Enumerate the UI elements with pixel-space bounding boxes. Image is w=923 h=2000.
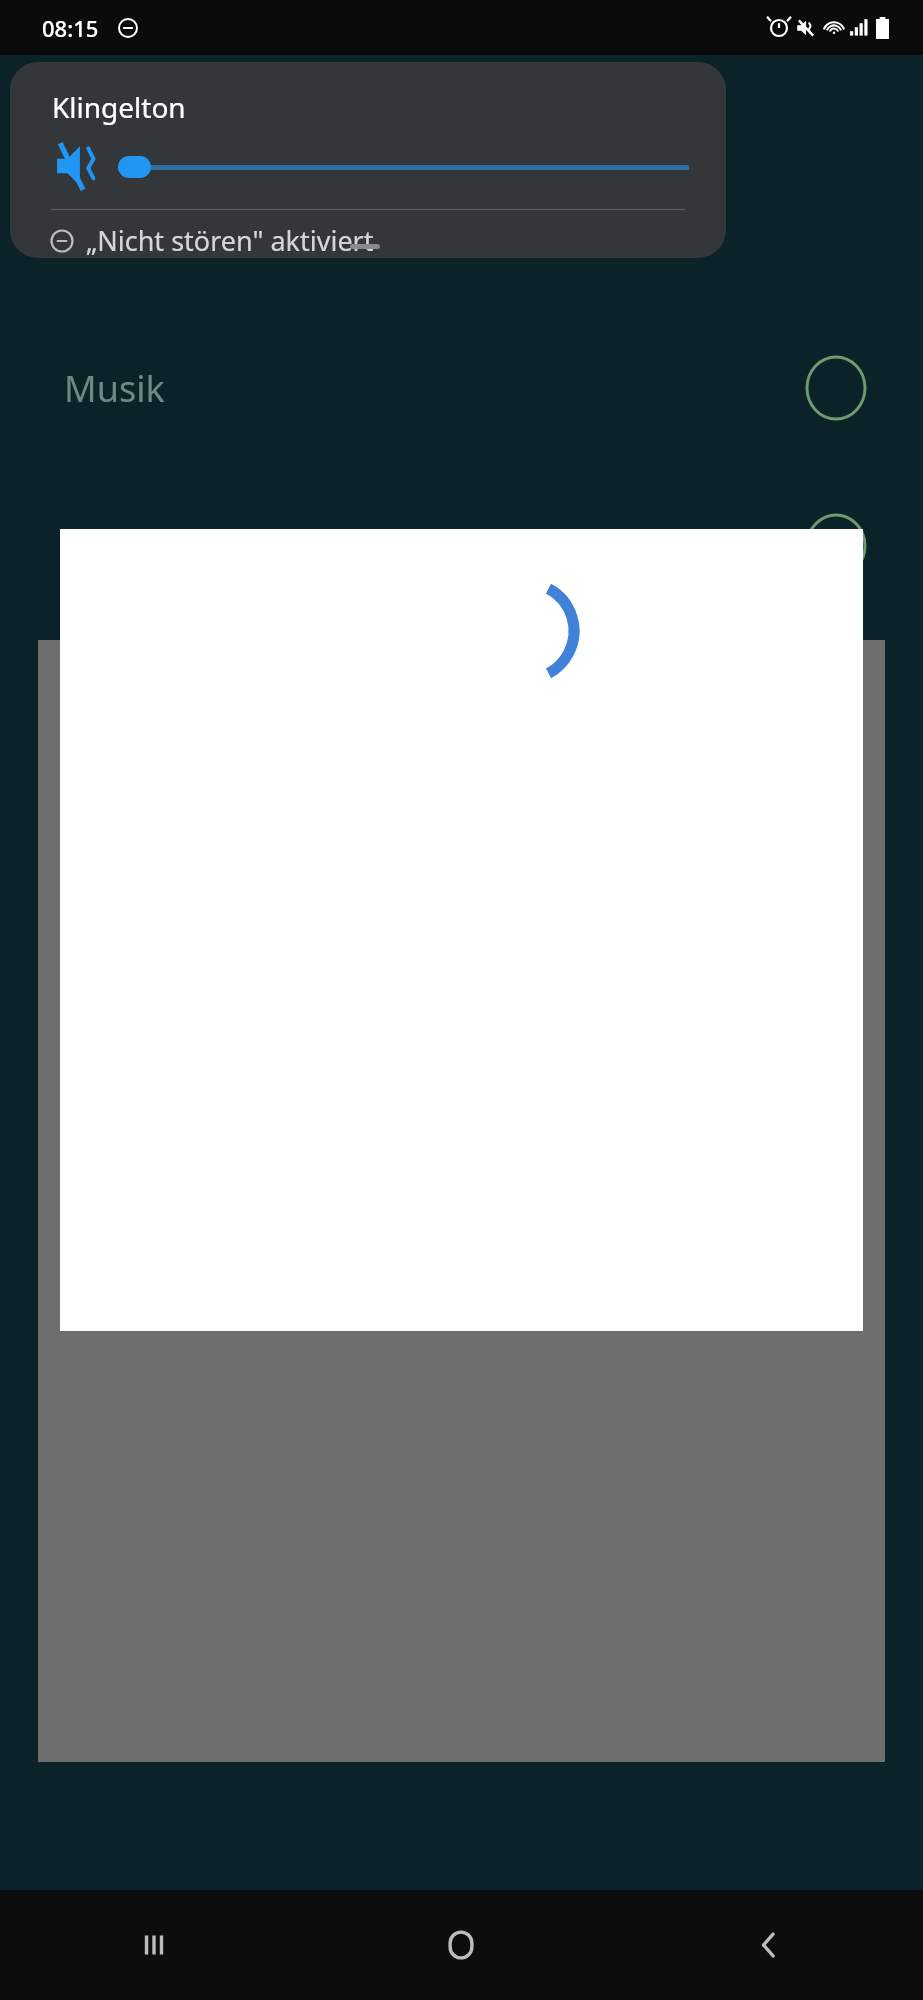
button[interactable]: Schließen — [320, 1327, 404, 1411]
staticText: „Nicht stören" aktiviert — [86, 222, 374, 258]
staticText: 08:15 — [42, 13, 99, 43]
button[interactable] — [118, 156, 151, 178]
button[interactable]: Zurück — [615, 1890, 923, 2000]
staticText: Soundeffekte — [64, 522, 291, 571]
button[interactable]: Soundeffekte — [0, 498, 923, 594]
button[interactable]: Letzte Apps — [0, 1890, 307, 2000]
staticText: Klingelton — [52, 88, 186, 126]
staticText: PUSH-MITTEILUNGEN — [64, 1308, 359, 1345]
button[interactable]: Musik — [0, 340, 923, 436]
button[interactable]: Startbildschirm — [307, 1890, 615, 2000]
staticText: Musik — [64, 364, 165, 413]
button[interactable]: „Nicht stören" aktiviert — [50, 222, 374, 258]
